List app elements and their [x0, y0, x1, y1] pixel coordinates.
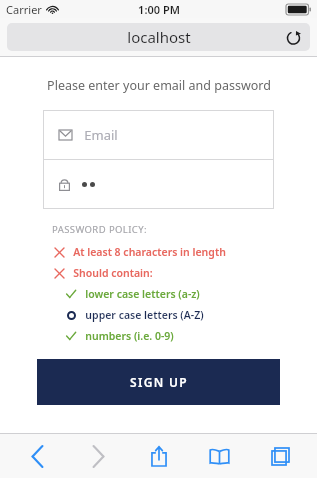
staticText: localhost: [127, 27, 191, 47]
button[interactable]: Forward: [74, 436, 122, 476]
button[interactable]: Reload: [282, 26, 304, 48]
staticText: lower case letters (a-z): [85, 287, 200, 301]
staticText: Please enter your email and password: [47, 77, 271, 94]
staticText: 1:00 PM: [138, 2, 180, 17]
button[interactable]: Share: [135, 436, 183, 476]
button[interactable]: [43, 160, 274, 209]
staticText: numbers (i.e. 0-9): [85, 329, 174, 343]
button[interactable]: SIGN UP: [37, 359, 280, 405]
button[interactable]: Email: [43, 110, 274, 159]
button[interactable]: Back: [13, 436, 61, 476]
staticText: Carrier: [6, 2, 42, 17]
button[interactable]: Tabs: [256, 436, 304, 476]
staticText: upper case letters (A-Z): [85, 308, 204, 322]
staticText: At least 8 characters in length: [73, 245, 226, 259]
button[interactable]: Bookmarks: [195, 436, 243, 476]
staticText: SIGN UP: [130, 374, 188, 390]
staticText: Should contain:: [73, 266, 153, 280]
staticText: Email: [84, 126, 118, 144]
staticText: PASSWORD POLICY:: [52, 223, 147, 236]
button[interactable]: localhost: [7, 23, 310, 51]
